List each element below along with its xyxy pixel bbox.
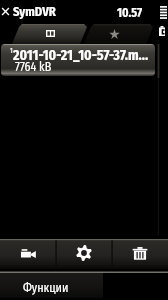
staticText: 2011-10-21_10-57-37.m...: [13, 47, 149, 64]
button[interactable]: Delete: [112, 239, 168, 269]
staticText: 10.57: [117, 6, 143, 20]
staticText: 7764 kB: [15, 60, 52, 74]
button[interactable]: Функции: [0, 272, 103, 298]
button[interactable]: 1: [1, 44, 155, 76]
staticText: Функции: [23, 281, 69, 295]
button[interactable]: Settings: [56, 239, 112, 269]
button[interactable]: Recordings: [26, 23, 74, 44]
staticText: SymDVR: [13, 4, 56, 19]
button[interactable]: Close: [1, 7, 10, 16]
staticText: 1: [10, 46, 13, 54]
button[interactable]: Record video: [0, 239, 56, 269]
button[interactable]: Favourites: [92, 23, 136, 44]
